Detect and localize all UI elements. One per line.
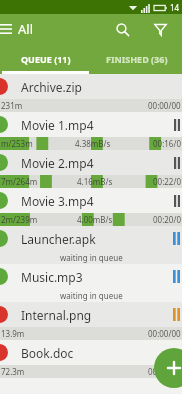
button[interactable]: Movie 2.mp4 <box>0 150 182 175</box>
button[interactable]: Open navigation menu <box>0 16 18 42</box>
staticText: 00:16/0 <box>153 138 181 149</box>
button[interactable]: Launcher.apk <box>0 226 182 251</box>
staticText: Movie 3.mp4 <box>21 193 94 209</box>
staticText: 14 <box>170 2 180 13</box>
button[interactable]: Music.mp3 <box>0 264 182 289</box>
button[interactable]: Archive.zip <box>0 74 182 99</box>
staticText: 00:00/00 <box>148 366 181 377</box>
staticText: Archive.zip <box>21 79 82 95</box>
staticText: 231m <box>1 100 23 111</box>
staticText: 4.16mB/s <box>77 176 113 187</box>
button[interactable]: Movie 3.mp4 <box>0 188 182 213</box>
staticText: 00:20/0 <box>153 214 181 225</box>
button[interactable]: Add download <box>154 348 182 388</box>
staticText: 00:00/00 <box>148 100 181 111</box>
button[interactable]: Book.doc <box>0 340 182 365</box>
staticText: 7m/264m <box>1 176 38 187</box>
button[interactable]: FINISHED (36) <box>91 44 182 74</box>
staticText: 72.3m <box>1 366 25 377</box>
staticText: 00:22/0 <box>153 176 181 187</box>
staticText: FINISHED (36) <box>106 53 168 65</box>
button[interactable]: Search <box>110 17 134 41</box>
button[interactable]: Filter <box>148 17 172 41</box>
staticText: 00:00/00 <box>148 328 181 339</box>
staticText: QUEUE (11) <box>21 53 71 65</box>
button[interactable]: QUEUE (11) <box>0 44 91 74</box>
staticText: waiting in queue <box>60 290 123 301</box>
staticText: 13.9m <box>1 328 25 339</box>
staticText: Movie 2.mp4 <box>21 155 94 171</box>
staticText: Book.doc <box>21 345 74 361</box>
button[interactable]: Internal.png <box>0 302 182 327</box>
staticText: Internal.png <box>21 307 92 323</box>
staticText: 2m/239m <box>1 214 38 225</box>
staticText: All <box>18 20 34 38</box>
staticText: Launcher.apk <box>21 231 96 247</box>
staticText: m/253m <box>1 138 33 149</box>
staticText: 4.38mB/s <box>75 138 111 149</box>
staticText: Music.mp3 <box>21 269 83 285</box>
staticText: waiting in queue <box>60 252 123 263</box>
button[interactable]: Movie 1.mp4 <box>0 112 182 137</box>
staticText: 4.00mB/s <box>77 214 113 225</box>
staticText: Movie 1.mp4 <box>21 117 94 133</box>
